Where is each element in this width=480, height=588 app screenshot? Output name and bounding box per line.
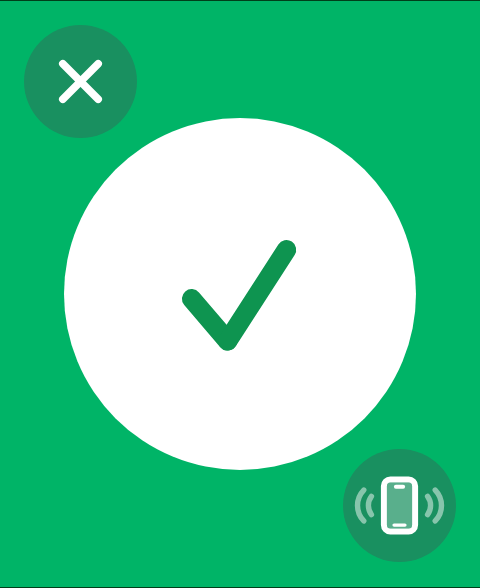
- button[interactable]: Close: [24, 25, 137, 138]
- button[interactable]: Vibrate: [343, 449, 456, 562]
